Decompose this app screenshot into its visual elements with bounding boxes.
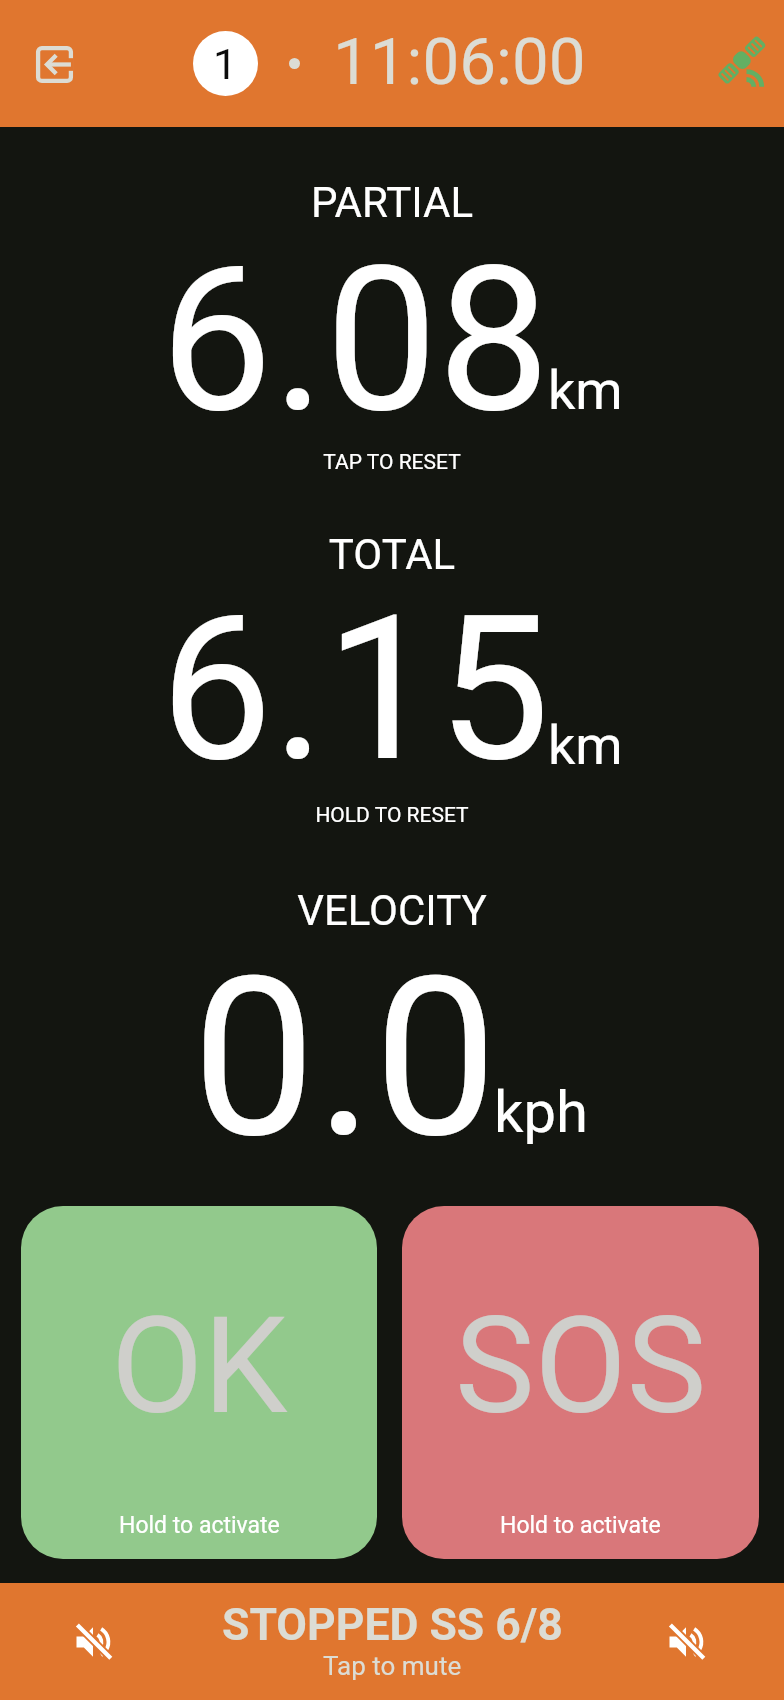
staticText: STOPPED SS 6/8 <box>222 1599 563 1651</box>
button[interactable]: GPS status <box>708 26 784 102</box>
staticText: Hold to activate <box>500 1512 661 1539</box>
staticText: km <box>548 359 623 422</box>
staticText: SOS <box>455 1288 707 1445</box>
staticText: km <box>548 714 623 777</box>
staticText: 6.08 <box>160 223 550 457</box>
staticText: HOLD TO RESET <box>0 803 784 828</box>
button[interactable]: Exit <box>16 26 92 102</box>
staticText: 0.0 <box>192 930 498 1188</box>
staticText: kph <box>494 1078 588 1146</box>
button[interactable]: Mute <box>57 1606 129 1678</box>
button[interactable]: PARTIAL <box>0 150 784 490</box>
staticText: 6.15 <box>160 572 550 806</box>
staticText: 1 <box>213 39 238 89</box>
staticText: TAP TO RESET <box>0 450 784 475</box>
staticText: VELOCITY <box>0 886 784 935</box>
staticText: Tap to mute <box>323 1651 462 1681</box>
button[interactable]: OK <box>21 1206 377 1559</box>
staticText: 11:06:00 <box>333 23 586 100</box>
button[interactable]: TOTAL <box>0 500 784 840</box>
staticText: Hold to activate <box>119 1512 280 1539</box>
staticText: OK <box>111 1288 288 1445</box>
button[interactable]: VELOCITY <box>0 860 784 1180</box>
staticText: TOTAL <box>0 530 784 579</box>
button[interactable]: SOS <box>402 1206 759 1559</box>
button[interactable]: Mute alarm <box>650 1606 722 1678</box>
staticText: PARTIAL <box>0 178 784 227</box>
